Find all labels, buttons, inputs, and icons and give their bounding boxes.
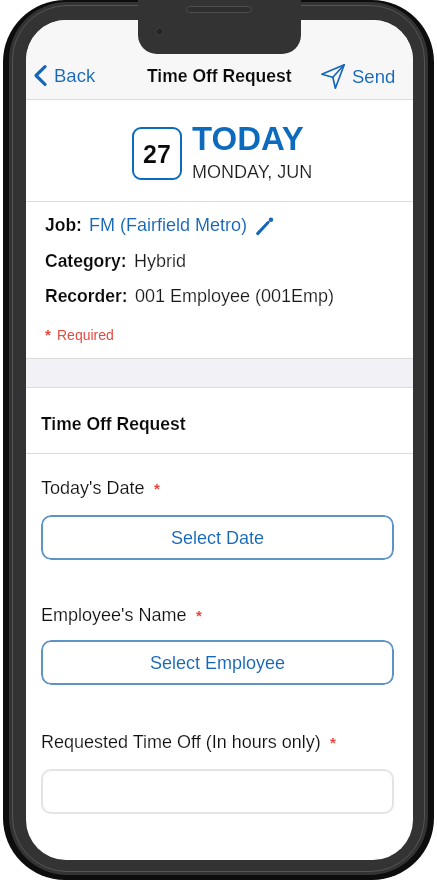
button[interactable]: Edit job bbox=[255, 216, 274, 235]
button[interactable] bbox=[41, 769, 394, 814]
staticText: Time Off Request bbox=[147, 66, 292, 86]
staticText: FM (Fairfield Metro) bbox=[89, 215, 248, 235]
staticText: MONDAY, JUN bbox=[192, 162, 313, 182]
staticText: Select Date bbox=[171, 528, 265, 548]
staticText: Job: bbox=[45, 215, 82, 235]
staticText: * bbox=[154, 480, 160, 497]
staticText: Send bbox=[352, 66, 396, 87]
staticText: Employee's Name bbox=[41, 605, 187, 625]
staticText: Time Off Request bbox=[41, 414, 186, 434]
staticText: * bbox=[45, 326, 51, 343]
staticText: * bbox=[196, 607, 202, 624]
staticText: Recorder: bbox=[45, 286, 128, 306]
button[interactable]: Select Employee bbox=[41, 640, 394, 685]
staticText: Back bbox=[54, 65, 96, 86]
staticText: Today's Date bbox=[41, 478, 145, 498]
staticText: Required bbox=[57, 327, 114, 343]
staticText: Hybrid bbox=[134, 251, 187, 271]
staticText: 001 Employee (001Emp) bbox=[135, 286, 335, 306]
button[interactable]: Send bbox=[311, 60, 413, 93]
staticText: 27 bbox=[143, 140, 171, 168]
staticText: Requested Time Off (In hours only) bbox=[41, 732, 321, 752]
staticText: TODAY bbox=[192, 120, 304, 157]
staticText: * bbox=[330, 734, 336, 751]
staticText: Select Employee bbox=[150, 653, 286, 673]
button[interactable]: Back bbox=[26, 60, 106, 91]
button[interactable]: Select Date bbox=[41, 515, 394, 560]
staticText: Category: bbox=[45, 251, 127, 271]
